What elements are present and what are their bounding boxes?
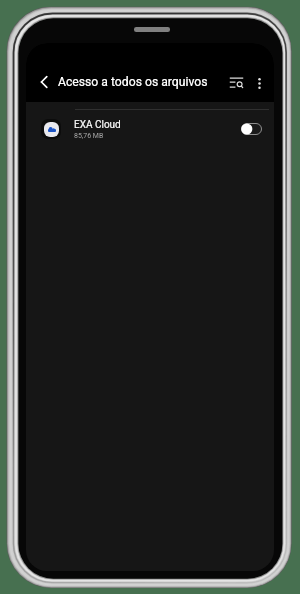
button[interactable]: Search [224, 69, 248, 95]
staticText: 85,76 MB [74, 132, 104, 140]
button[interactable]: Toggle EXA Cloud [241, 122, 262, 136]
staticText: Acesso a todos os arquivos [58, 75, 208, 89]
button[interactable]: Back [30, 68, 58, 96]
staticText: EXA Cloud [74, 119, 121, 131]
button[interactable]: EXA Cloud [26, 110, 274, 148]
button[interactable]: More options [250, 69, 270, 95]
